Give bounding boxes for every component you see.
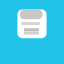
button[interactable] (0, 0, 64, 64)
